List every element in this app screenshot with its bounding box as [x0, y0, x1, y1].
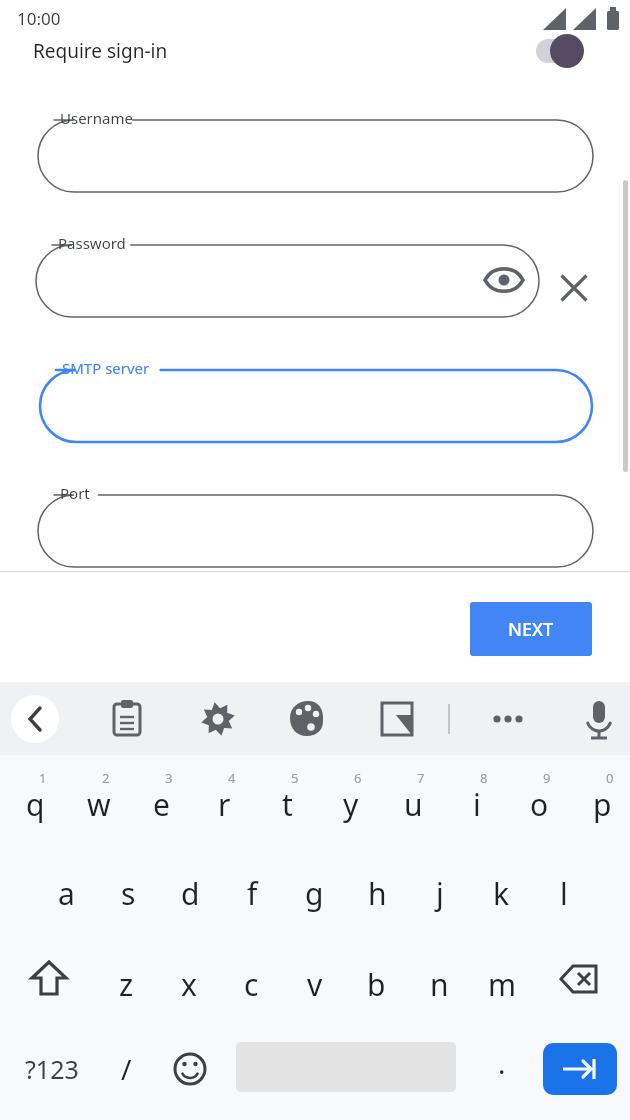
button[interactable]: Emoji — [160, 1039, 220, 1099]
staticText: k — [493, 873, 510, 914]
button[interactable]: / — [96, 1039, 156, 1099]
staticText: 9 — [543, 769, 551, 787]
staticText: l — [560, 873, 568, 914]
button[interactable]: Require sign-in toggle — [534, 33, 590, 69]
button[interactable]: r — [193, 767, 256, 833]
staticText: z — [119, 964, 134, 1005]
button[interactable]: NEXT — [470, 602, 592, 656]
button[interactable]: c — [220, 947, 283, 1013]
staticText: s — [121, 873, 136, 914]
staticText: d — [181, 873, 200, 914]
button[interactable]: Settings — [194, 695, 242, 743]
button[interactable]: Sticker — [373, 695, 421, 743]
button[interactable]: Clipboard — [103, 695, 151, 743]
staticText: b — [367, 964, 386, 1005]
staticText: m — [488, 964, 517, 1005]
staticText: u — [404, 784, 423, 825]
staticText: / — [121, 1050, 132, 1088]
button[interactable]: w — [67, 767, 130, 833]
button[interactable]: Enter — [543, 1043, 617, 1095]
button[interactable]: i — [445, 767, 508, 833]
staticText: x — [181, 964, 197, 1005]
button[interactable]: a — [35, 856, 98, 922]
staticText: 3 — [165, 769, 173, 787]
staticText: q — [26, 784, 45, 825]
button[interactable] — [0, 0, 630, 1120]
button[interactable]: Shift — [18, 949, 80, 1009]
staticText: v — [307, 964, 323, 1005]
staticText: Password — [58, 233, 126, 253]
staticText: 0 — [606, 769, 614, 787]
button[interactable]: t — [256, 767, 319, 833]
button[interactable]: v — [283, 947, 346, 1013]
staticText: 5 — [291, 769, 299, 787]
staticText: NEXT — [508, 617, 554, 642]
staticText: c — [244, 964, 259, 1005]
staticText: h — [368, 873, 387, 914]
button[interactable]: Back — [11, 695, 59, 743]
button[interactable]: Voice input — [575, 695, 623, 743]
button[interactable]: e — [130, 767, 193, 833]
staticText: w — [87, 784, 111, 825]
staticText: p — [593, 784, 612, 825]
button[interactable]: l — [532, 856, 595, 922]
staticText: Require sign-in — [33, 38, 168, 64]
staticText: 8 — [480, 769, 488, 787]
button[interactable]: o — [508, 767, 571, 833]
button[interactable]: k — [470, 856, 533, 922]
staticText: o — [530, 784, 549, 825]
button[interactable]: y — [319, 767, 382, 833]
button[interactable]: b — [345, 947, 408, 1013]
staticText: a — [58, 873, 75, 914]
button[interactable]: s — [97, 856, 160, 922]
staticText: r — [218, 784, 231, 825]
staticText: 6 — [354, 769, 362, 787]
button[interactable]: j — [408, 856, 471, 922]
staticText: n — [430, 964, 449, 1005]
button[interactable] — [0, 0, 630, 1120]
button[interactable]: Theme — [283, 695, 331, 743]
staticText: y — [343, 784, 359, 825]
button[interactable]: q — [4, 767, 67, 833]
button[interactable]: m — [471, 947, 534, 1013]
button[interactable]: f — [221, 856, 284, 922]
button[interactable]: x — [157, 947, 220, 1013]
staticText: 2 — [102, 769, 110, 787]
staticText: t — [282, 784, 293, 825]
button[interactable] — [0, 0, 630, 1120]
staticText: g — [305, 873, 324, 914]
button[interactable]: Backspace — [548, 949, 610, 1009]
staticText: . — [498, 1044, 506, 1082]
button[interactable]: Clear — [556, 270, 592, 306]
button[interactable]: z — [95, 947, 158, 1013]
staticText: 7 — [417, 769, 425, 787]
button[interactable]: . — [476, 1039, 528, 1099]
button[interactable]: Require sign-in — [0, 28, 630, 74]
staticText: 10:00 — [17, 7, 61, 30]
button[interactable]: p — [571, 767, 630, 833]
button[interactable]: n — [408, 947, 471, 1013]
staticText: 4 — [228, 769, 236, 787]
staticText: j — [436, 873, 444, 914]
button[interactable]: d — [159, 856, 222, 922]
staticText: SMTP server — [62, 358, 150, 378]
staticText: i — [473, 784, 481, 825]
staticText: f — [247, 873, 258, 914]
staticText: Username — [60, 108, 133, 128]
staticText: 1 — [39, 769, 47, 787]
button[interactable]: More options — [484, 695, 532, 743]
button[interactable]: u — [382, 767, 445, 833]
staticText: Port — [60, 483, 90, 503]
staticText: e — [153, 784, 170, 825]
button[interactable] — [0, 0, 630, 1120]
button[interactable]: Show password — [484, 260, 524, 300]
button[interactable]: g — [283, 856, 346, 922]
button[interactable]: ?123 — [12, 1039, 92, 1099]
button[interactable]: h — [346, 856, 409, 922]
staticText: ?123 — [25, 1052, 79, 1086]
